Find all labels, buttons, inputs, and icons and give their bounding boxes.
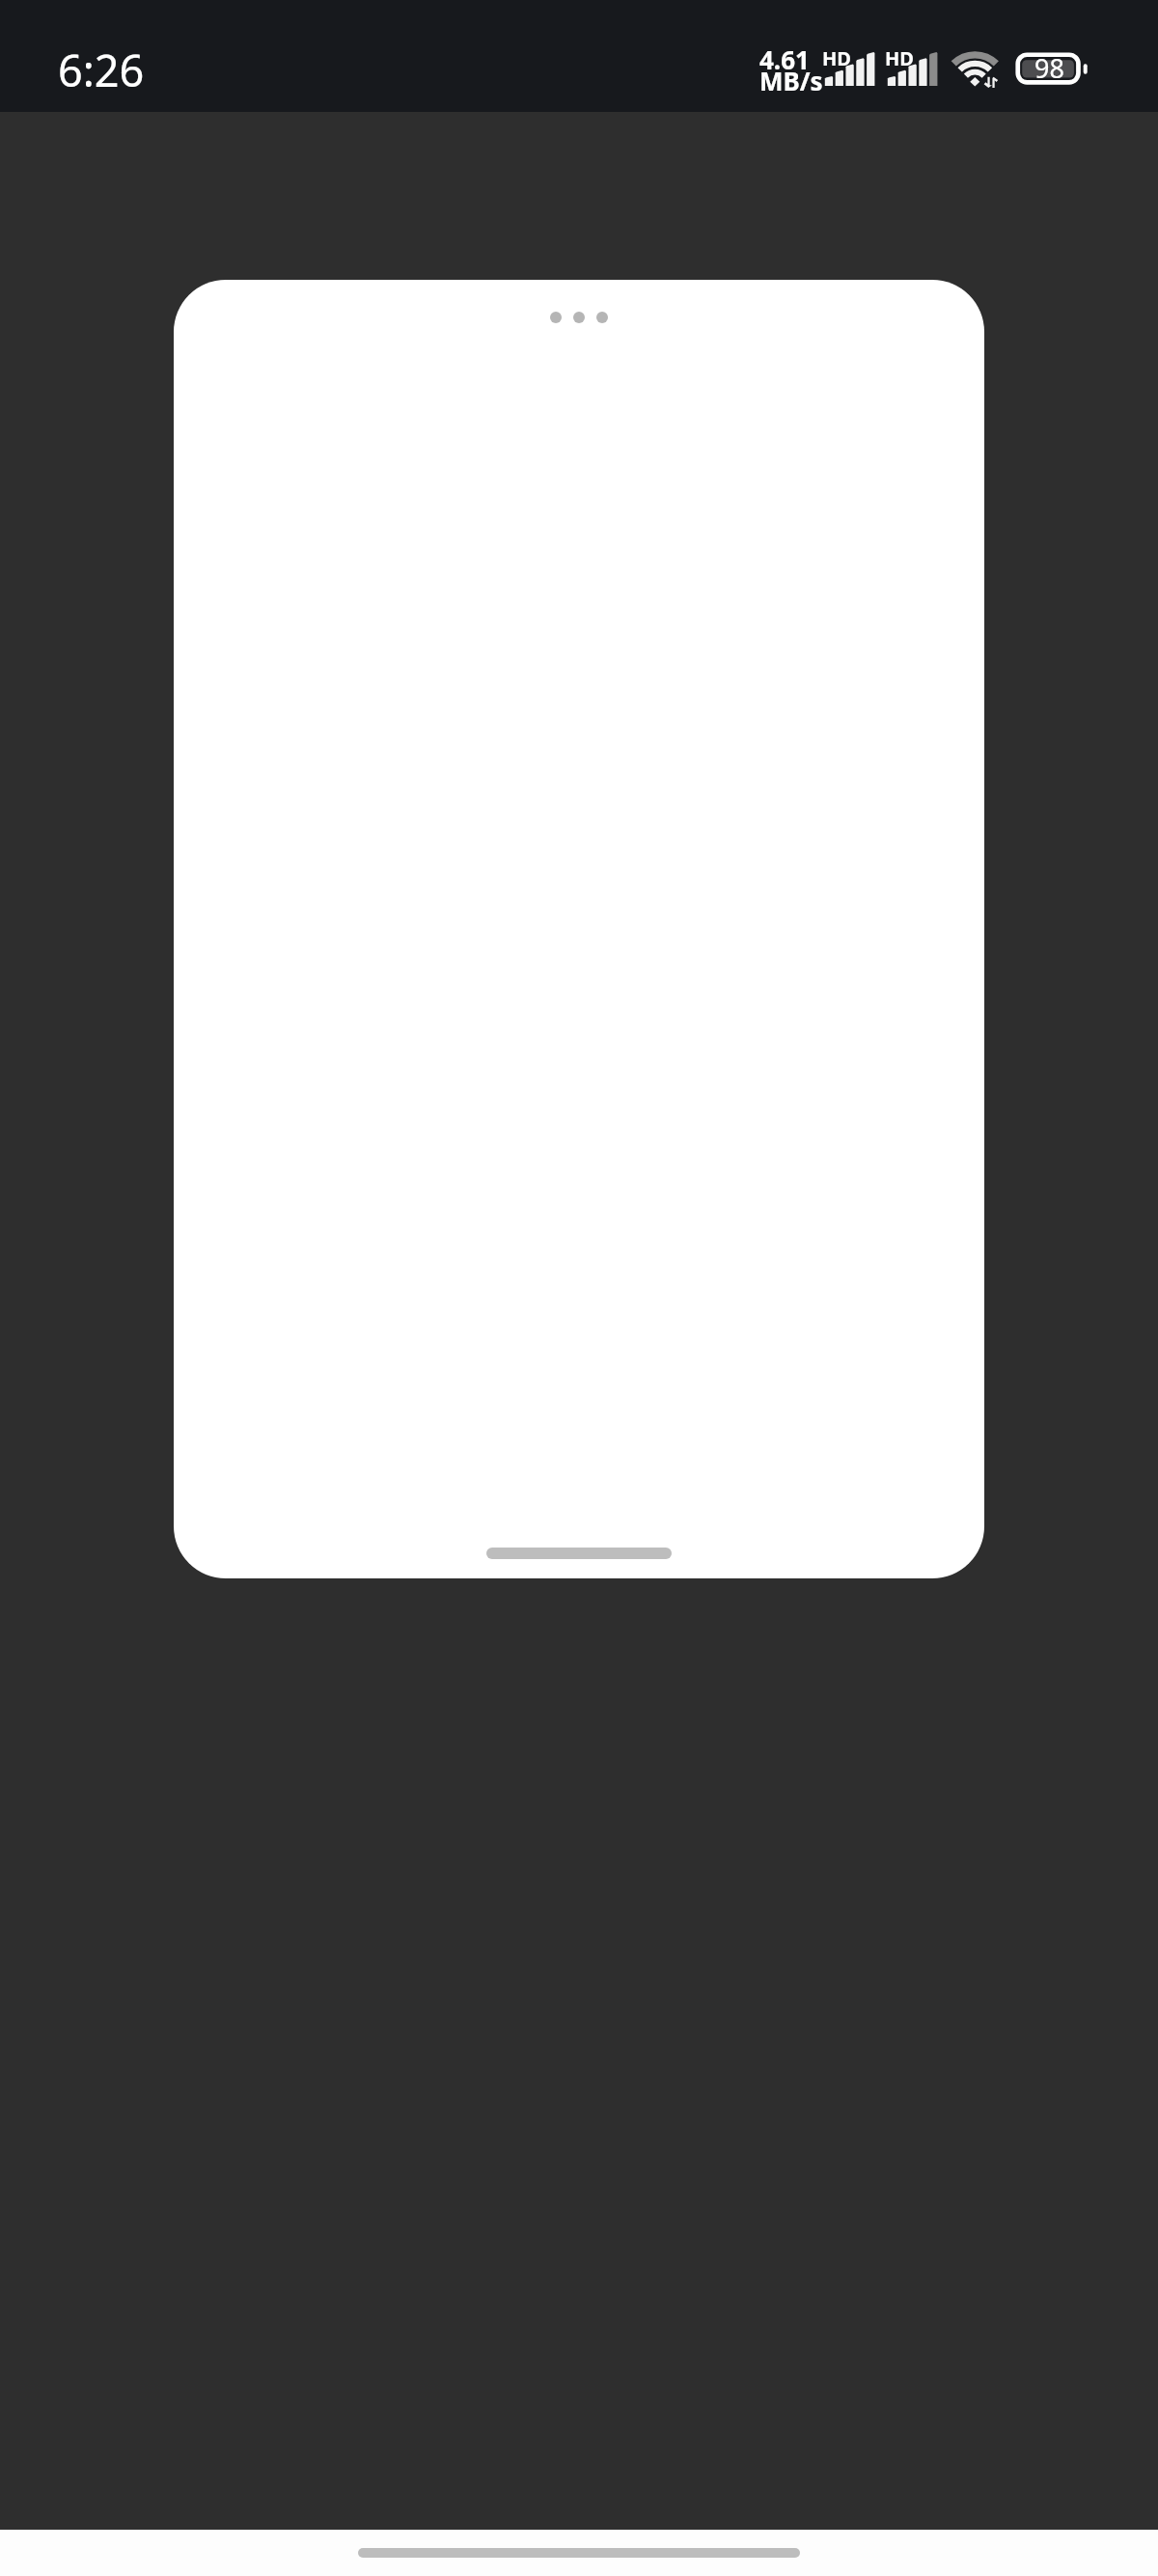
staticText: MB/s (759, 64, 823, 97)
button[interactable]: More options (550, 301, 608, 334)
staticText: 4.61 (759, 42, 810, 76)
button[interactable]: Drag handle (486, 1548, 672, 1559)
button[interactable]: Home (358, 2548, 800, 2558)
staticText: HD (885, 45, 914, 71)
staticText: 98 (1034, 50, 1064, 86)
button[interactable]: Content sheet (174, 280, 984, 1578)
staticText: HD (822, 45, 851, 71)
staticText: 6:26 (58, 41, 145, 99)
